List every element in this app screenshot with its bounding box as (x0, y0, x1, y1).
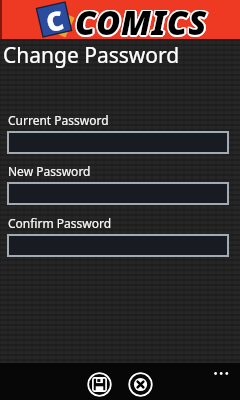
button[interactable]: C (0, 0, 240, 39)
staticText: Change Password (3, 41, 180, 70)
staticText: COMICS (74, 1, 207, 40)
staticText: C (42, 1, 66, 37)
staticText: COMICS (74, 0, 207, 39)
button[interactable] (7, 182, 229, 205)
staticText: COMICS (76, 0, 209, 38)
button[interactable] (7, 131, 229, 154)
staticText: COMICS (76, 1, 209, 40)
staticText: Confirm Password (8, 215, 112, 231)
staticText: New Password (8, 163, 91, 179)
staticText: Current Password (8, 112, 109, 128)
button[interactable] (128, 372, 153, 397)
staticText: COMICS (74, 0, 207, 38)
staticText: COMICS (75, 0, 208, 39)
button[interactable] (87, 372, 112, 397)
staticText: COMICS (75, 0, 208, 38)
staticText: COMICS (75, 2, 208, 41)
staticText: COMICS (77, 0, 210, 39)
button[interactable] (208, 363, 240, 383)
button[interactable] (7, 234, 229, 257)
